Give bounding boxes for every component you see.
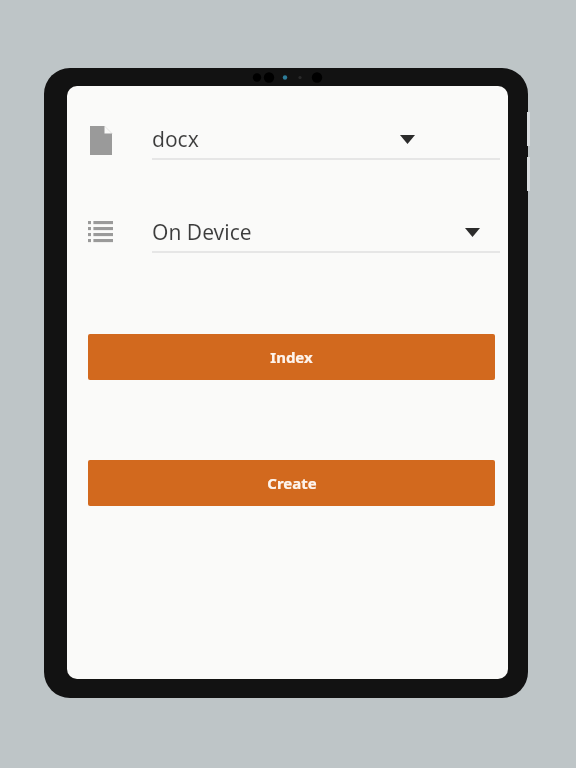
- staticText: docx: [152, 125, 199, 154]
- staticText: Index: [270, 347, 313, 367]
- staticText: On Device: [152, 218, 252, 247]
- button[interactable]: Create: [88, 460, 495, 506]
- button[interactable]: File format docx: [152, 118, 500, 160]
- button[interactable]: Index: [88, 334, 495, 380]
- button[interactable]: Source On Device: [152, 211, 500, 253]
- staticText: Create: [267, 473, 317, 493]
